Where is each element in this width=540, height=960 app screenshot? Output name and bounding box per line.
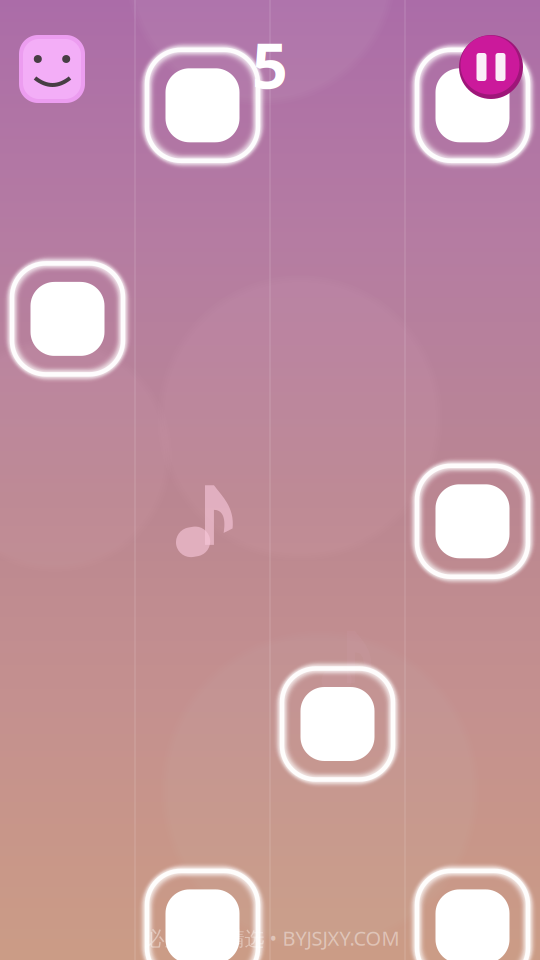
staticText: 必用手机精选 • BYJSJXY.COM (144, 925, 399, 951)
button[interactable]: Pause (458, 34, 524, 100)
button[interactable]: Profile (18, 34, 86, 104)
staticText: 5 (252, 23, 288, 106)
